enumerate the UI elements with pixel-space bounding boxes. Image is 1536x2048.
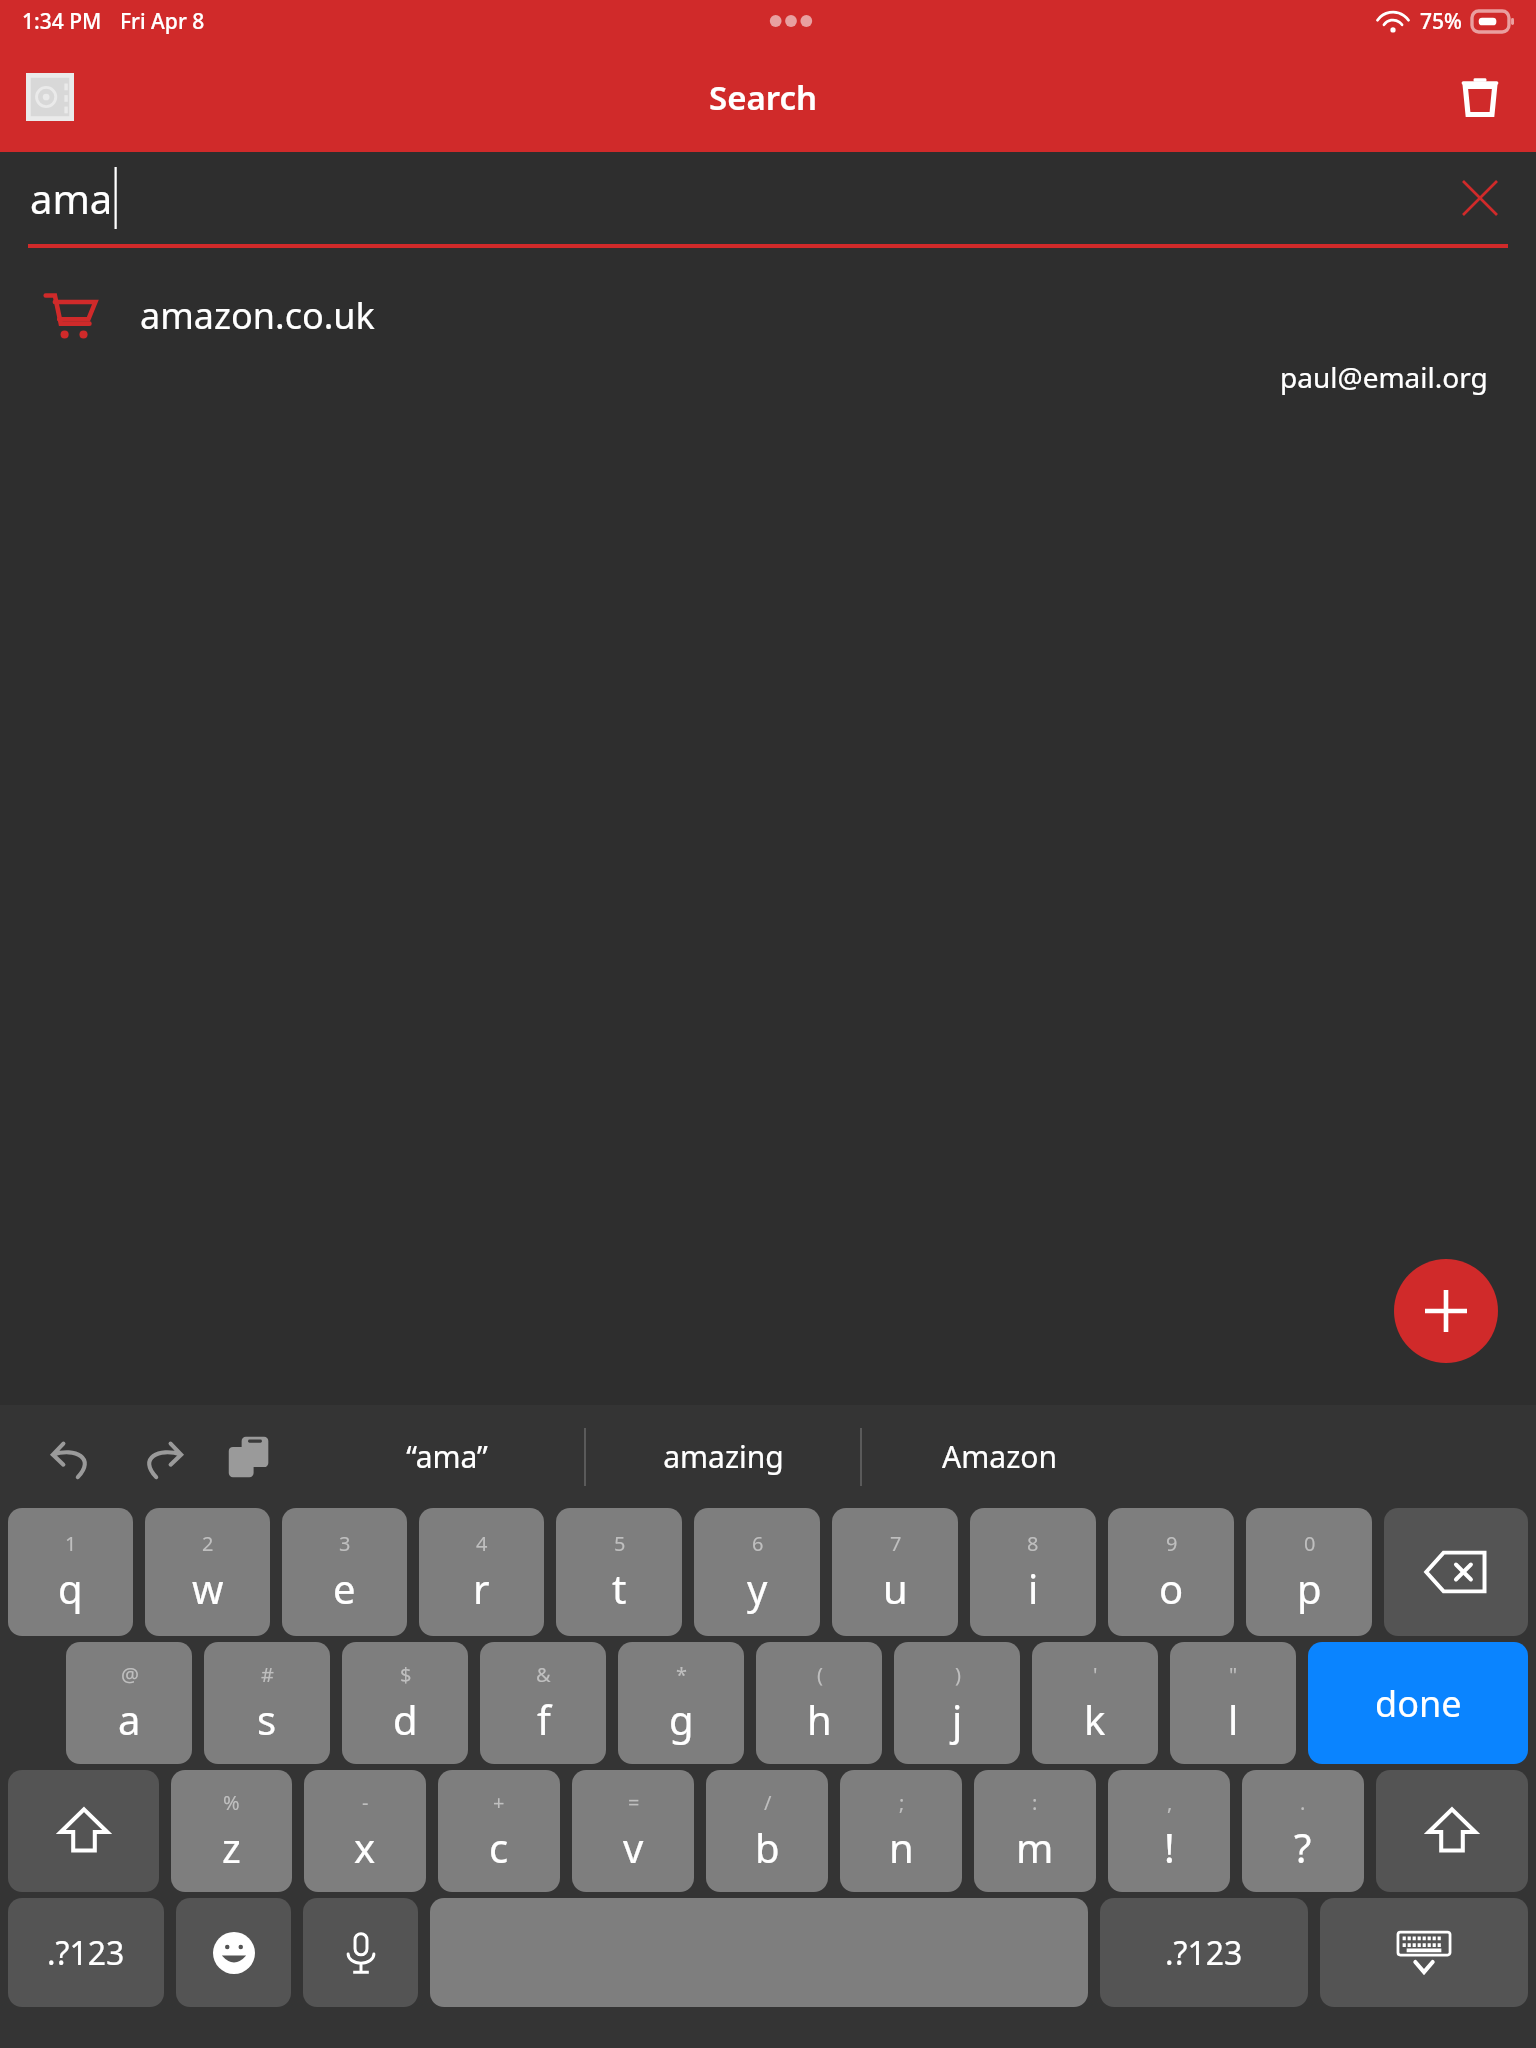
button[interactable]: done bbox=[1308, 1642, 1528, 1764]
staticText: + bbox=[493, 1789, 505, 1816]
button[interactable]: 6 bbox=[694, 1508, 820, 1636]
staticText: 75% bbox=[1420, 7, 1462, 36]
staticText: * bbox=[676, 1661, 688, 1688]
staticText: s bbox=[257, 1692, 277, 1746]
button[interactable]: amazon.co.uk bbox=[0, 272, 1536, 358]
staticText: 9 bbox=[1166, 1530, 1178, 1557]
button[interactable]: 1 bbox=[8, 1508, 133, 1636]
staticText: 2 bbox=[202, 1530, 214, 1557]
button[interactable]: - bbox=[304, 1770, 426, 1892]
button[interactable]: = bbox=[572, 1770, 694, 1892]
button[interactable]: / bbox=[706, 1770, 828, 1892]
staticText: ? bbox=[1294, 1820, 1312, 1874]
button[interactable]: $ bbox=[342, 1642, 468, 1764]
staticText: : bbox=[1032, 1789, 1038, 1816]
button[interactable]: & bbox=[480, 1642, 606, 1764]
staticText: y bbox=[747, 1561, 768, 1615]
staticText: - bbox=[362, 1789, 369, 1816]
staticText: m bbox=[1016, 1820, 1054, 1874]
staticText: / bbox=[764, 1789, 772, 1816]
button[interactable]: Delete bbox=[1450, 67, 1510, 127]
button[interactable]: 5 bbox=[556, 1508, 682, 1636]
button[interactable]: Add bbox=[1394, 1259, 1498, 1363]
staticText: amazing bbox=[663, 1436, 784, 1477]
button[interactable]: : bbox=[974, 1770, 1096, 1892]
staticText: p bbox=[1297, 1561, 1322, 1615]
staticText: 1:34 PM bbox=[22, 7, 102, 36]
staticText: c bbox=[489, 1820, 509, 1874]
staticText: ( bbox=[817, 1661, 823, 1688]
button[interactable]: % bbox=[171, 1770, 292, 1892]
button[interactable]: @ bbox=[66, 1642, 192, 1764]
staticText: " bbox=[1229, 1661, 1238, 1688]
button[interactable]: 8 bbox=[970, 1508, 1096, 1636]
button[interactable]: , bbox=[1108, 1770, 1230, 1892]
staticText: @ bbox=[121, 1661, 139, 1688]
button[interactable]: # bbox=[204, 1642, 330, 1764]
button[interactable]: ) bbox=[894, 1642, 1020, 1764]
button[interactable]: Shift bbox=[8, 1770, 159, 1892]
staticText: n bbox=[889, 1820, 914, 1874]
staticText: i bbox=[1028, 1561, 1039, 1615]
button[interactable]: Space bbox=[430, 1898, 1088, 2007]
staticText: a bbox=[118, 1692, 141, 1746]
button[interactable]: 3 bbox=[282, 1508, 407, 1636]
staticText: j bbox=[952, 1692, 963, 1746]
staticText: z bbox=[222, 1820, 241, 1874]
button[interactable]: Redo bbox=[128, 1424, 194, 1490]
staticText: % bbox=[223, 1789, 240, 1816]
button[interactable]: Backspace bbox=[1384, 1508, 1528, 1636]
button[interactable]: 0 bbox=[1246, 1508, 1372, 1636]
button[interactable]: .?123 bbox=[8, 1898, 164, 2007]
staticText: u bbox=[883, 1561, 908, 1615]
staticText: # bbox=[261, 1661, 274, 1688]
staticText: Fri Apr 8 bbox=[120, 7, 205, 36]
button[interactable]: ; bbox=[840, 1770, 962, 1892]
staticText: o bbox=[1159, 1561, 1184, 1615]
staticText: = bbox=[628, 1789, 640, 1816]
staticText: w bbox=[192, 1561, 224, 1615]
staticText: h bbox=[807, 1692, 832, 1746]
button[interactable]: ama bbox=[0, 152, 1536, 244]
staticText: f bbox=[537, 1692, 551, 1746]
button[interactable]: .?123 bbox=[1100, 1898, 1308, 2007]
button[interactable]: . bbox=[1242, 1770, 1364, 1892]
button[interactable]: “ama” bbox=[310, 1405, 584, 1508]
staticText: l bbox=[1228, 1692, 1239, 1746]
staticText: ; bbox=[899, 1789, 905, 1816]
button[interactable]: Vault bbox=[22, 69, 78, 125]
staticText: g bbox=[669, 1692, 694, 1746]
staticText: , bbox=[1167, 1789, 1173, 1816]
button[interactable]: 7 bbox=[832, 1508, 958, 1636]
button[interactable]: Clear text bbox=[1454, 172, 1506, 224]
button[interactable]: " bbox=[1170, 1642, 1296, 1764]
staticText: 3 bbox=[339, 1530, 351, 1557]
staticText: . bbox=[1300, 1789, 1306, 1816]
button[interactable]: amazing bbox=[586, 1405, 860, 1508]
staticText: done bbox=[1375, 1679, 1462, 1728]
button[interactable]: * bbox=[618, 1642, 744, 1764]
button[interactable]: Paste bbox=[216, 1424, 282, 1490]
staticText: q bbox=[58, 1561, 83, 1615]
button[interactable]: 2 bbox=[145, 1508, 270, 1636]
button[interactable]: Shift bbox=[1376, 1770, 1528, 1892]
button[interactable]: Undo bbox=[40, 1424, 106, 1490]
button[interactable]: 9 bbox=[1108, 1508, 1234, 1636]
button[interactable]: Amazon bbox=[862, 1405, 1136, 1508]
staticText: 0 bbox=[1304, 1530, 1316, 1557]
staticText: k bbox=[1084, 1692, 1106, 1746]
button[interactable]: ( bbox=[756, 1642, 882, 1764]
button[interactable]: ' bbox=[1032, 1642, 1158, 1764]
staticText: 1 bbox=[65, 1530, 77, 1557]
staticText: v bbox=[623, 1820, 644, 1874]
button[interactable]: + bbox=[438, 1770, 560, 1892]
staticText: $ bbox=[400, 1661, 412, 1688]
button[interactable]: Emoji bbox=[176, 1898, 291, 2007]
staticText: .?123 bbox=[47, 1931, 125, 1975]
button[interactable]: Hide keyboard bbox=[1320, 1898, 1528, 2007]
staticText: amazon.co.uk bbox=[140, 291, 375, 340]
staticText: t bbox=[612, 1561, 627, 1615]
button[interactable]: 4 bbox=[419, 1508, 544, 1636]
staticText: .?123 bbox=[1165, 1931, 1243, 1975]
button[interactable]: Voice input bbox=[303, 1898, 418, 2007]
